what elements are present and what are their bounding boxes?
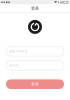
button[interactable]: 验证码 xyxy=(6,61,64,70)
staticText: 请输入手机号 xyxy=(9,50,27,53)
staticText: 验证码 xyxy=(9,64,18,67)
staticText: 登录 xyxy=(31,82,39,87)
button[interactable]: 登录 xyxy=(6,79,64,89)
staticText: 登录 xyxy=(31,6,39,11)
button[interactable]: 请输入手机号 xyxy=(6,46,64,56)
